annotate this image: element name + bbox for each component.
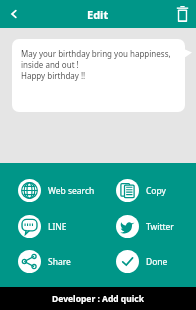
button[interactable]: Done [98, 246, 196, 277]
button[interactable]: Web search [0, 175, 98, 206]
staticText: Twitter [146, 221, 174, 233]
button[interactable]: Back [0, 0, 28, 28]
button[interactable]: LINE [0, 211, 98, 242]
staticText: Share [48, 256, 71, 268]
staticText: May your birthday bring you happiness, i… [21, 48, 171, 81]
button[interactable]: Twitter [98, 211, 196, 242]
staticText: Copy [146, 185, 166, 197]
staticText: Web search [48, 185, 95, 197]
staticText: Developer : Add quick [52, 293, 144, 305]
staticText: LINE [48, 221, 67, 233]
button[interactable]: Developer : Add quick [0, 287, 196, 310]
button[interactable]: Delete [168, 0, 196, 28]
button[interactable]: May your birthday bring you happiness, i… [12, 39, 185, 112]
button[interactable]: Copy [98, 175, 196, 206]
staticText: Done [146, 256, 168, 268]
button[interactable]: Share [0, 246, 98, 277]
staticText: Edit [87, 7, 109, 22]
